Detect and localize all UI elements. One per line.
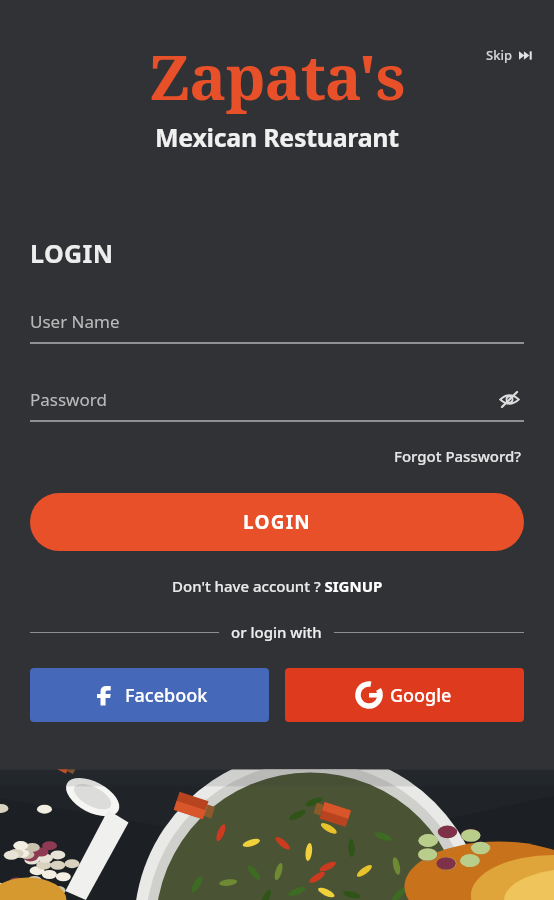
staticText: LOGIN xyxy=(30,236,114,270)
button[interactable]: Skip xyxy=(482,44,536,66)
button[interactable]: Show password xyxy=(495,385,524,414)
staticText: Don't have account ? SIGNUP xyxy=(172,576,383,596)
button[interactable]: LOGIN xyxy=(30,493,524,551)
staticText: Mexican Restuarant xyxy=(155,120,399,154)
staticText: Google xyxy=(390,683,452,708)
button[interactable]: Facebook xyxy=(30,668,269,722)
button[interactable]: Google xyxy=(285,668,524,722)
staticText: Zapata's xyxy=(149,34,405,118)
staticText: Skip xyxy=(486,46,512,64)
staticText: Facebook xyxy=(125,683,208,708)
button[interactable]: Password xyxy=(30,388,524,422)
staticText: Forgot Password? xyxy=(394,446,522,466)
staticText: LOGIN xyxy=(243,509,311,535)
staticText: or login with xyxy=(231,622,322,642)
button[interactable]: Forgot Password? xyxy=(392,444,524,468)
staticText: Password xyxy=(30,388,107,411)
button[interactable]: Don't have account ? SIGNUP xyxy=(168,574,387,598)
staticText: User Name xyxy=(30,310,120,333)
button[interactable]: User Name xyxy=(30,310,524,344)
